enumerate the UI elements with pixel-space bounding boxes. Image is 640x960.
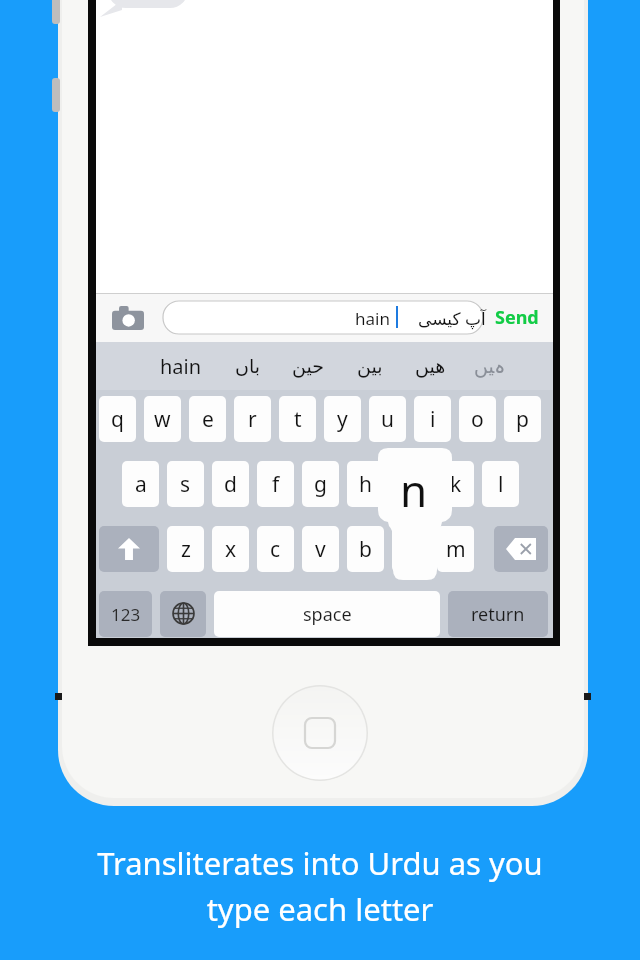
staticText: آپ کیسی — [418, 307, 486, 330]
staticText: hain — [355, 307, 390, 330]
button[interactable]: g — [302, 461, 339, 507]
staticText: hain — [160, 353, 202, 380]
staticText: c — [270, 535, 281, 564]
staticText: n — [400, 460, 428, 520]
button[interactable]: Delete — [494, 526, 548, 572]
button[interactable]: x — [212, 526, 249, 572]
button[interactable]: بین — [341, 346, 399, 386]
button[interactable]: return — [448, 591, 548, 637]
staticText: 123 — [111, 603, 141, 626]
button[interactable]: k — [437, 461, 474, 507]
staticText: ہیں — [474, 355, 506, 377]
button[interactable]: space — [214, 591, 440, 637]
staticText: z — [181, 535, 191, 564]
staticText: return — [471, 602, 525, 627]
staticText: بین — [357, 355, 383, 377]
staticText: حین — [292, 355, 324, 377]
button[interactable]: i — [414, 396, 451, 442]
button[interactable]: r — [234, 396, 271, 442]
staticText: o — [471, 405, 484, 434]
button[interactable]: l — [482, 461, 519, 507]
button[interactable]: u — [369, 396, 406, 442]
button[interactable]: m — [437, 526, 474, 572]
button[interactable]: Switch keyboard — [160, 591, 206, 637]
button[interactable]: c — [257, 526, 294, 572]
staticText: f — [272, 470, 280, 499]
staticText: k — [450, 470, 462, 499]
button[interactable]: f — [257, 461, 294, 507]
staticText: q — [111, 405, 124, 434]
button[interactable]: y — [324, 396, 361, 442]
button[interactable]: o — [459, 396, 496, 442]
staticText: x — [225, 535, 237, 564]
button[interactable]: ہیں — [461, 346, 519, 386]
button[interactable]: s — [167, 461, 204, 507]
button[interactable]: w — [144, 396, 181, 442]
staticText: Send — [495, 305, 539, 330]
button[interactable]: a — [122, 461, 159, 507]
staticText: h — [359, 470, 372, 499]
staticText: باں — [235, 355, 261, 377]
staticText: u — [381, 405, 394, 434]
staticText: y — [337, 405, 348, 434]
button[interactable]: باں — [219, 346, 277, 386]
staticText: a — [135, 470, 147, 499]
button[interactable]: Send — [488, 300, 546, 334]
staticText: s — [180, 470, 191, 499]
staticText: t — [294, 405, 302, 434]
button[interactable]: v — [302, 526, 339, 572]
button[interactable]: h — [347, 461, 384, 507]
staticText: l — [498, 470, 504, 499]
button[interactable]: e — [189, 396, 226, 442]
button[interactable]: Camera — [108, 302, 148, 334]
button[interactable]: ھیں — [401, 346, 459, 386]
button[interactable]: 123 — [99, 591, 152, 637]
button[interactable]: d — [212, 461, 249, 507]
staticText: d — [224, 470, 237, 499]
staticText: v — [315, 535, 326, 564]
button[interactable] — [163, 301, 483, 334]
button[interactable]: z — [167, 526, 204, 572]
staticText: g — [314, 470, 327, 499]
button[interactable] — [392, 461, 429, 507]
staticText: m — [446, 535, 466, 564]
button[interactable]: t — [279, 396, 316, 442]
staticText: p — [516, 405, 529, 434]
button[interactable]: Shift — [99, 526, 159, 572]
staticText: Transliterates into Urdu as you type eac… — [30, 842, 610, 952]
staticText: e — [202, 405, 214, 434]
staticText: i — [430, 405, 436, 434]
button[interactable]: حین — [279, 346, 337, 386]
staticText: space — [303, 602, 352, 627]
staticText: b — [359, 535, 372, 564]
button[interactable]: q — [99, 396, 136, 442]
button[interactable]: p — [504, 396, 541, 442]
staticText: r — [248, 405, 257, 434]
staticText: ھیں — [415, 355, 446, 377]
button[interactable]: hain — [152, 346, 210, 386]
staticText: w — [154, 405, 171, 434]
button[interactable]: b — [347, 526, 384, 572]
